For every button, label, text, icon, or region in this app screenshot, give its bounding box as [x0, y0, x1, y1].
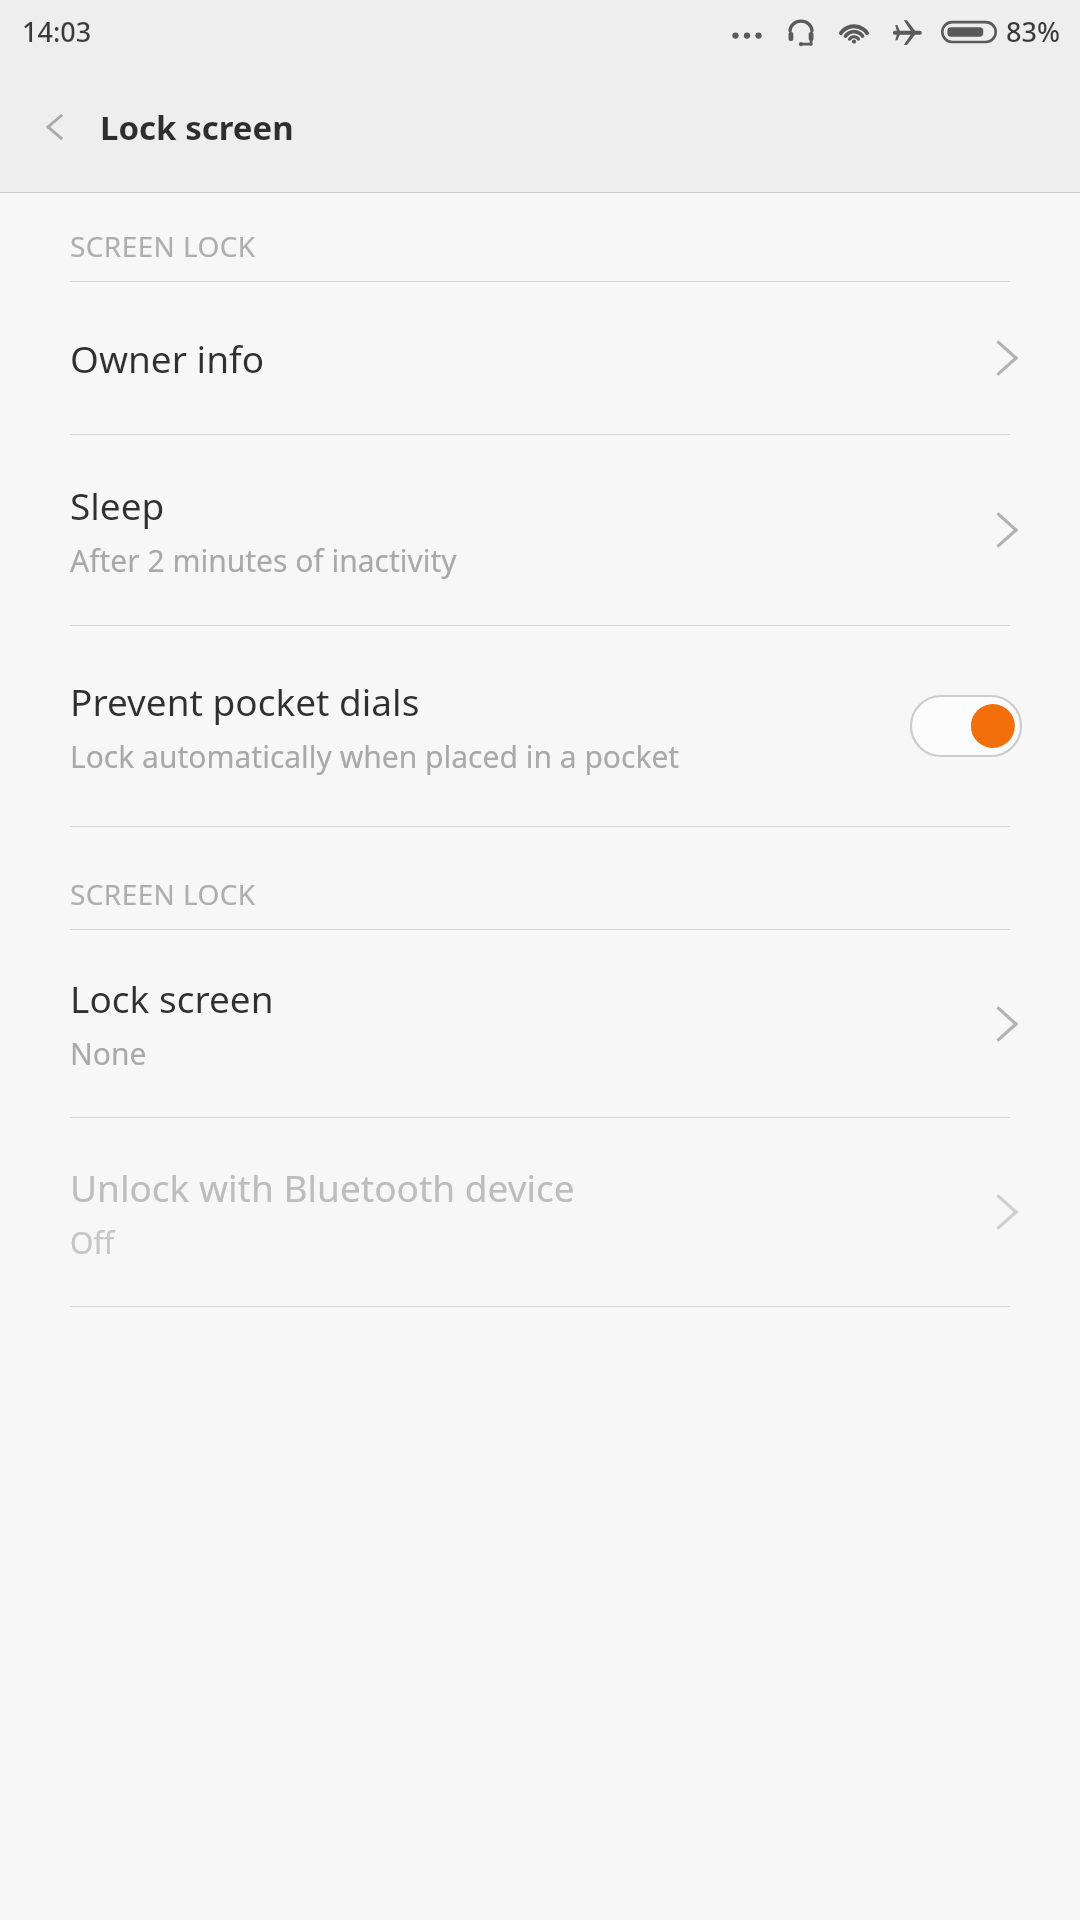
- button[interactable]: Prevent pocket dials: [0, 626, 1080, 826]
- staticText: SCREEN LOCK: [70, 227, 256, 265]
- staticText: Lock screen: [70, 973, 274, 1023]
- staticText: 14:03: [22, 13, 92, 50]
- staticText: After 2 minutes of inactivity: [70, 540, 457, 581]
- staticText: Unlock with Bluetooth device: [70, 1162, 575, 1212]
- button[interactable]: Prevent pocket dials toggle: [910, 695, 1022, 757]
- staticText: 83%: [1006, 13, 1060, 50]
- staticText: Off: [70, 1222, 115, 1263]
- button[interactable]: Sleep: [0, 435, 1080, 625]
- button[interactable]: Unlock with Bluetooth device: [0, 1118, 1080, 1306]
- button[interactable]: Lock screen: [0, 930, 1080, 1117]
- staticText: Sleep: [70, 480, 165, 530]
- staticText: None: [70, 1033, 147, 1074]
- staticText: SCREEN LOCK: [70, 875, 256, 913]
- button[interactable]: Back: [22, 94, 88, 160]
- staticText: Owner info: [70, 333, 265, 383]
- staticText: Lock automatically when placed in a pock…: [70, 736, 680, 777]
- staticText: Prevent pocket dials: [70, 676, 420, 726]
- staticText: Lock screen: [100, 105, 294, 150]
- button[interactable]: Owner info: [0, 282, 1080, 434]
